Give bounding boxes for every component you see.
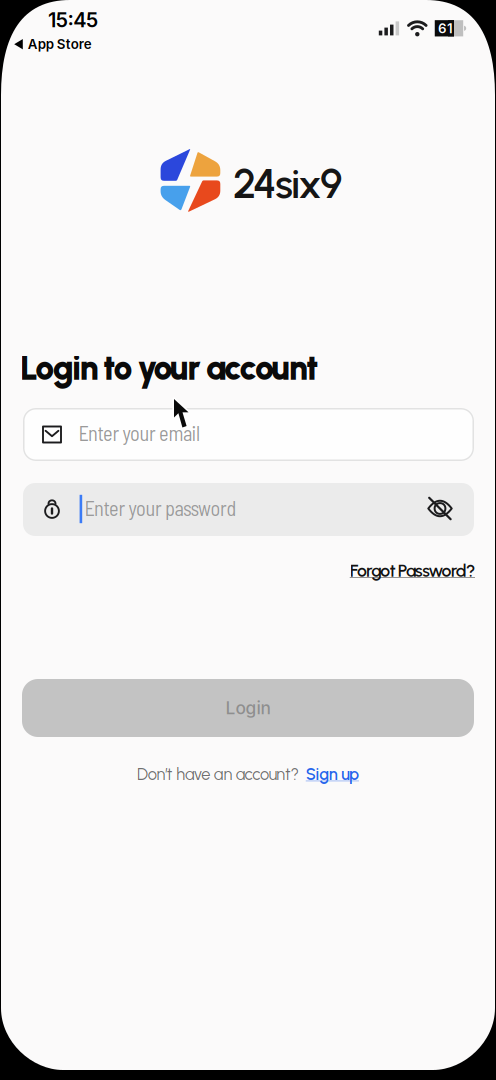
staticText: Enter your email <box>78 421 200 445</box>
staticText: 15:45 <box>48 8 98 32</box>
staticText: 61 <box>438 21 453 36</box>
button[interactable]: Show password <box>418 486 462 530</box>
staticText: Don’t have an account? <box>137 764 299 784</box>
staticText: Login to your account <box>20 347 318 388</box>
button[interactable]: Enter your password <box>23 483 474 536</box>
button[interactable]: Sign up <box>306 764 359 784</box>
staticText: Forgot Password? <box>350 560 475 581</box>
button[interactable]: Login <box>22 679 474 737</box>
button[interactable]: Back to App Store <box>14 36 92 52</box>
button[interactable]: Enter your email <box>23 408 474 461</box>
staticText: App Store <box>28 36 92 52</box>
staticText: Login <box>225 698 270 718</box>
button[interactable]: Forgot Password? <box>285 556 475 584</box>
staticText: Sign up <box>306 764 359 784</box>
staticText: 24six9 <box>233 159 342 208</box>
staticText: Enter your password <box>84 496 236 520</box>
